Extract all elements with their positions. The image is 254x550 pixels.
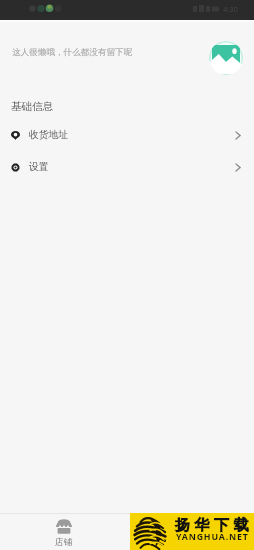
staticText: 4:30 <box>223 4 238 14</box>
staticText: 收货地址 <box>29 129 69 141</box>
staticText: 基础信息 <box>11 100 53 113</box>
button[interactable]: 收货地址 <box>0 119 254 151</box>
staticText: 设置 <box>29 161 49 173</box>
button[interactable]: 设置 <box>0 151 254 183</box>
staticText: YANGHUA.NET <box>176 531 249 543</box>
button[interactable]: 店铺 <box>0 514 128 550</box>
button[interactable]: Avatar <box>209 41 243 75</box>
staticText: 扬华下载 <box>175 516 254 535</box>
staticText: 店铺 <box>55 537 73 548</box>
staticText: 这人很懒哦，什么都没有留下呢 <box>12 47 133 58</box>
